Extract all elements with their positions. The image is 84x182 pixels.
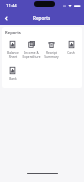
staticText: Bank xyxy=(9,77,17,81)
staticText: Reports xyxy=(33,15,51,21)
staticText: Reports xyxy=(5,30,21,36)
button[interactable]: Income & Expenditure xyxy=(22,38,41,64)
button[interactable]: Receipt Summary xyxy=(41,38,61,64)
button[interactable]: Cash xyxy=(61,38,81,60)
button[interactable]: Balance Sheet xyxy=(3,38,22,64)
staticText: Receipt Summary xyxy=(44,51,59,59)
staticText: Cash xyxy=(67,51,75,55)
staticText: 11:44 xyxy=(6,3,17,9)
button[interactable]: Back xyxy=(2,14,11,23)
staticText: Balance Sheet xyxy=(7,51,19,59)
button[interactable]: Bank xyxy=(3,64,22,86)
staticText: Income & Expenditure xyxy=(22,51,41,59)
